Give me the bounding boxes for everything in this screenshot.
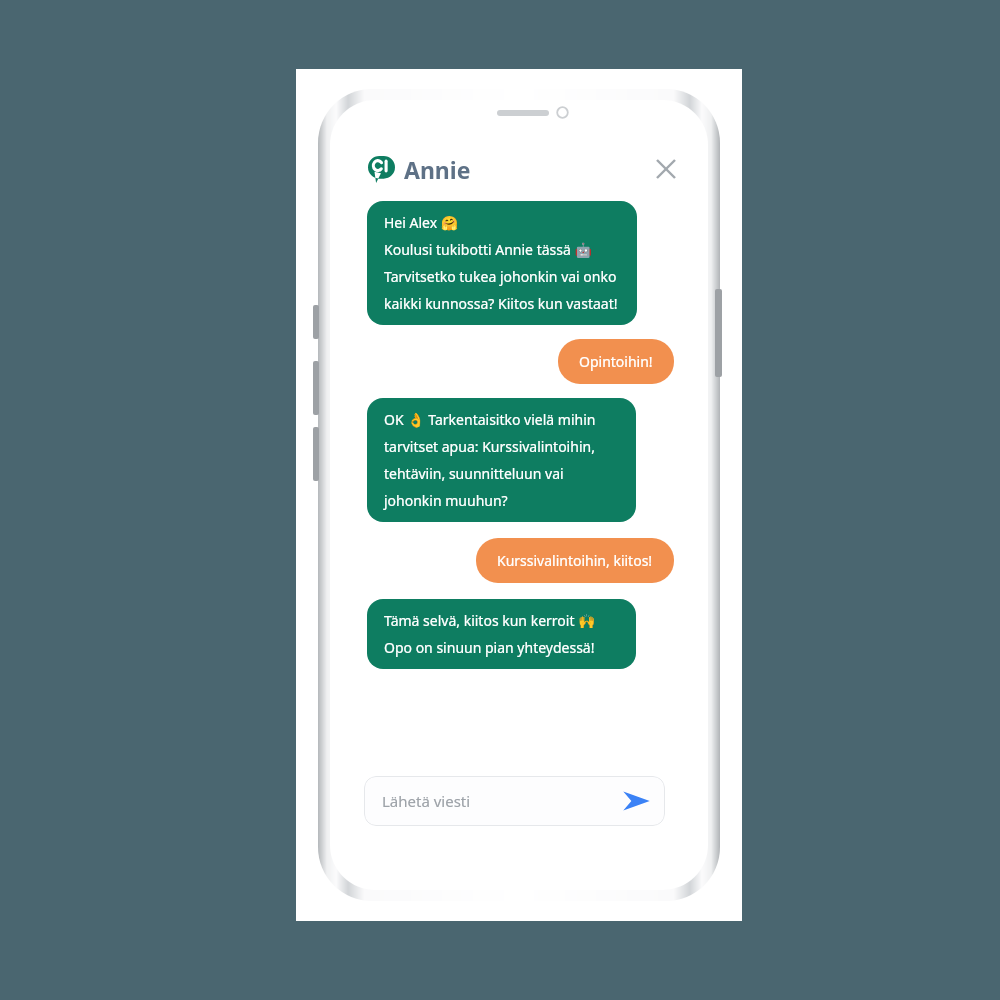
button[interactable]: Annie xyxy=(368,154,471,185)
button[interactable]: Close xyxy=(650,153,682,185)
staticText: johonkin muuhun? xyxy=(384,491,508,510)
staticText: kaikki kunnossa? Kiitos kun vastaat! xyxy=(384,294,618,313)
button[interactable]: OK 👌 Tarkentaisitko vielä mihin xyxy=(367,398,636,522)
staticText: Koulusi tukibotti Annie tässä 🤖 xyxy=(384,240,592,259)
staticText: Kurssivalintoihin, kiitos! xyxy=(497,551,653,570)
button[interactable]: Opintoihin! xyxy=(558,339,674,384)
staticText: OK 👌 Tarkentaisitko vielä mihin xyxy=(384,410,596,429)
button[interactable]: Lähetä viesti xyxy=(364,776,665,826)
staticText: Tarvitsetko tukea johonkin vai onko xyxy=(384,267,617,286)
staticText: tarvitset apua: Kurssivalintoihin, xyxy=(384,437,595,456)
button[interactable]: Hei Alex 🤗 xyxy=(367,201,637,325)
staticText: Opo on sinuun pian yhteydessä! xyxy=(384,638,595,657)
staticText: Opintoihin! xyxy=(579,352,653,371)
staticText: Tämä selvä, kiitos kun kerroit 🙌 xyxy=(384,611,596,630)
staticText: Lähetä viesti xyxy=(382,791,471,811)
staticText: Hei Alex 🤗 xyxy=(384,213,459,232)
button[interactable]: Tämä selvä, kiitos kun kerroit 🙌 xyxy=(367,599,636,669)
staticText: Annie xyxy=(404,154,471,185)
button[interactable]: Send xyxy=(619,784,653,818)
staticText: tehtäviin, suunnitteluun vai xyxy=(384,464,564,483)
button[interactable]: Kurssivalintoihin, kiitos! xyxy=(476,538,674,583)
